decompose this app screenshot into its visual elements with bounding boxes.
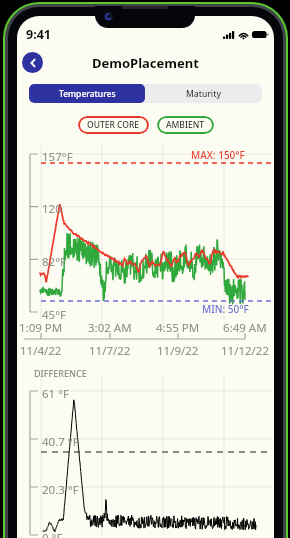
staticText: 82°F — [42, 254, 67, 270]
staticText: 45°F — [42, 307, 67, 323]
staticText: 120 — [42, 201, 62, 217]
staticText: DIFFERENCE — [34, 367, 87, 379]
staticText: Maturity — [186, 88, 221, 100]
staticText: 11/4/22 — [20, 343, 62, 359]
staticText: 1:09 PM — [19, 320, 63, 336]
staticText: Temperatures — [59, 88, 116, 100]
button[interactable]: Back — [22, 52, 43, 73]
staticText: 20.3 °F — [42, 482, 79, 498]
staticText: 6:49 AM — [223, 320, 267, 336]
button[interactable]: AMBIENT — [157, 116, 214, 134]
staticText: 157°F — [42, 149, 73, 165]
staticText: DemoPlacement — [92, 54, 199, 72]
staticText: MAX: 150°F — [191, 148, 245, 162]
staticText: 11/12/22 — [221, 343, 270, 359]
staticText: OUTER CORE — [87, 119, 140, 131]
staticText: AMBIENT — [166, 119, 205, 131]
button[interactable]: OUTER CORE — [78, 116, 149, 134]
staticText: 9:41 — [26, 26, 51, 43]
staticText: MIN: 50°F — [202, 302, 249, 316]
staticText: 11/7/22 — [89, 343, 131, 359]
staticText: 40.7 °F — [42, 434, 79, 450]
button[interactable]: Maturity — [145, 84, 262, 103]
staticText: 4:55 PM — [156, 320, 200, 336]
staticText: 61 °F — [42, 386, 70, 402]
button[interactable]: Temperatures — [29, 84, 145, 103]
staticText: 11/9/22 — [157, 343, 199, 359]
staticText: 3:02 AM — [88, 320, 132, 336]
staticText: 0 °F — [42, 530, 63, 538]
